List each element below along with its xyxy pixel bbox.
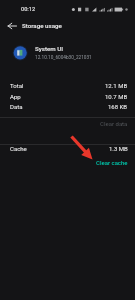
staticText: Cache: [10, 145, 27, 152]
staticText: 12.10.10_6004b30_221031: [35, 55, 92, 61]
button[interactable]: Clear cache: [0, 157, 135, 168]
button[interactable]: Back: [4, 18, 20, 34]
staticText: Storage usage: [22, 22, 62, 29]
staticText: 168 KB: [108, 103, 128, 110]
staticText: 10.7 MB: [105, 93, 128, 100]
staticText: 1.3 MB: [109, 145, 128, 152]
staticText: Total: [10, 82, 24, 89]
button[interactable]: Cache: [0, 143, 135, 154]
button[interactable]: Total: [0, 80, 135, 91]
staticText: Clear cache: [96, 159, 128, 166]
button[interactable]: Data: [0, 101, 135, 112]
staticText: Data: [10, 103, 23, 110]
staticText: App: [10, 93, 21, 100]
staticText: Clear data: [100, 120, 128, 127]
staticText: 00:12: [21, 6, 36, 13]
button[interactable]: App: [0, 91, 135, 102]
staticText: 12.1 MB: [105, 82, 128, 89]
staticText: System UI: [35, 45, 64, 52]
button[interactable]: Clear data: [0, 118, 135, 129]
